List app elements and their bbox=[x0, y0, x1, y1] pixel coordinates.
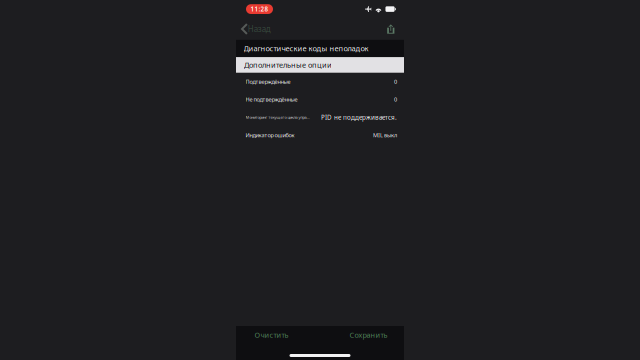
staticText: Подтверждённые bbox=[245, 78, 290, 85]
staticText: 0 bbox=[394, 78, 397, 85]
button[interactable]: Дополнительные опции bbox=[236, 57, 404, 73]
staticText: Диагностические коды неполадок bbox=[244, 43, 369, 54]
staticText: 0 bbox=[394, 96, 397, 103]
staticText: MIL выкл bbox=[373, 131, 397, 139]
staticText: Не подтверждённые bbox=[245, 96, 297, 103]
staticText: Сохранить bbox=[349, 330, 387, 340]
staticText: PID не поддерживается. bbox=[321, 113, 397, 121]
staticText: Дополнительные опции bbox=[244, 60, 332, 70]
staticText: Очистить bbox=[254, 330, 288, 340]
staticText: Мониторинг текущего цикла упра… bbox=[245, 114, 309, 120]
button[interactable]: Сохранить bbox=[343, 325, 393, 345]
button[interactable]: Поделиться bbox=[381, 22, 404, 36]
staticText: Индикатор ошибок bbox=[245, 131, 294, 139]
button[interactable]: Очистить bbox=[248, 325, 294, 345]
button[interactable]: Назад bbox=[236, 20, 277, 38]
staticText: 11:28 bbox=[250, 5, 268, 13]
staticText: Назад bbox=[248, 24, 271, 34]
button[interactable]: Диагностические коды неполадок bbox=[236, 40, 404, 57]
